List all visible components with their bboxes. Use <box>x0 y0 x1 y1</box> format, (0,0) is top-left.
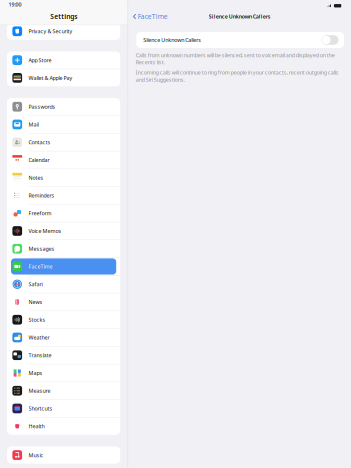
staticText: App Store <box>28 57 51 64</box>
button[interactable]: Privacy & Security <box>7 23 120 40</box>
staticText: Reminders <box>28 192 54 199</box>
button[interactable]: Voice Memos <box>7 222 120 240</box>
button[interactable]: FaceTime <box>128 11 171 21</box>
staticText: Shortcuts <box>28 405 52 412</box>
button[interactable]: Translate <box>7 347 120 364</box>
staticText: FaceTime <box>138 12 168 21</box>
staticText: Wallet & Apple Pay <box>28 74 72 81</box>
button[interactable]: Contacts <box>7 134 120 151</box>
staticText: Passwords <box>28 103 55 110</box>
button[interactable]: Music <box>7 446 120 464</box>
staticText: Incoming calls will continue to ring fro… <box>136 69 339 83</box>
button[interactable]: Mail <box>7 116 120 133</box>
staticText: Calendar <box>28 156 49 163</box>
button[interactable]: Passwords <box>7 98 120 115</box>
staticText: Mail <box>28 121 38 128</box>
staticText: News <box>28 298 42 305</box>
button[interactable]: Reminders <box>7 187 120 204</box>
staticText: FaceTime <box>28 263 52 270</box>
button[interactable]: App Store <box>7 51 120 69</box>
staticText: Notes <box>28 174 43 181</box>
staticText: Stocks <box>28 316 45 323</box>
button[interactable]: FaceTime <box>7 258 120 275</box>
staticText: Settings <box>50 12 77 21</box>
button[interactable]: Freeform <box>7 205 120 222</box>
staticText: Translate <box>28 352 51 359</box>
staticText: Weather <box>28 334 49 341</box>
button[interactable]: Measure <box>7 382 120 399</box>
staticText: Freeform <box>28 210 51 217</box>
button[interactable]: Wallet & Apple Pay <box>7 69 120 87</box>
button[interactable]: News <box>7 293 120 311</box>
button[interactable]: Stocks <box>7 311 120 328</box>
staticText: Contacts <box>28 139 50 146</box>
staticText: Safari <box>28 281 42 288</box>
button[interactable]: Silence Unknown Callers <box>136 32 344 48</box>
staticText: Maps <box>28 369 42 376</box>
staticText: 19:00 <box>8 1 21 8</box>
staticText: Silence Unknown Callers <box>143 36 201 44</box>
staticText: Measure <box>28 387 50 394</box>
staticText: Calls from unknown numbers will be silen… <box>136 52 335 66</box>
button[interactable]: Weather <box>7 329 120 346</box>
button[interactable]: Safari <box>7 276 120 293</box>
button[interactable]: Maps <box>7 364 120 382</box>
button[interactable]: Messages <box>7 240 120 257</box>
button[interactable]: Health <box>7 418 120 435</box>
staticText: Messages <box>28 245 54 252</box>
staticText: Voice Memos <box>28 227 61 234</box>
staticText: Health <box>28 423 44 430</box>
button[interactable]: Shortcuts <box>7 400 120 417</box>
staticText: Privacy & Security <box>28 28 72 35</box>
staticText: Music <box>28 451 43 459</box>
button[interactable]: Notes <box>7 169 120 186</box>
staticText: Silence Unknown Callers <box>209 13 271 20</box>
button[interactable]: Calendar <box>7 151 120 169</box>
